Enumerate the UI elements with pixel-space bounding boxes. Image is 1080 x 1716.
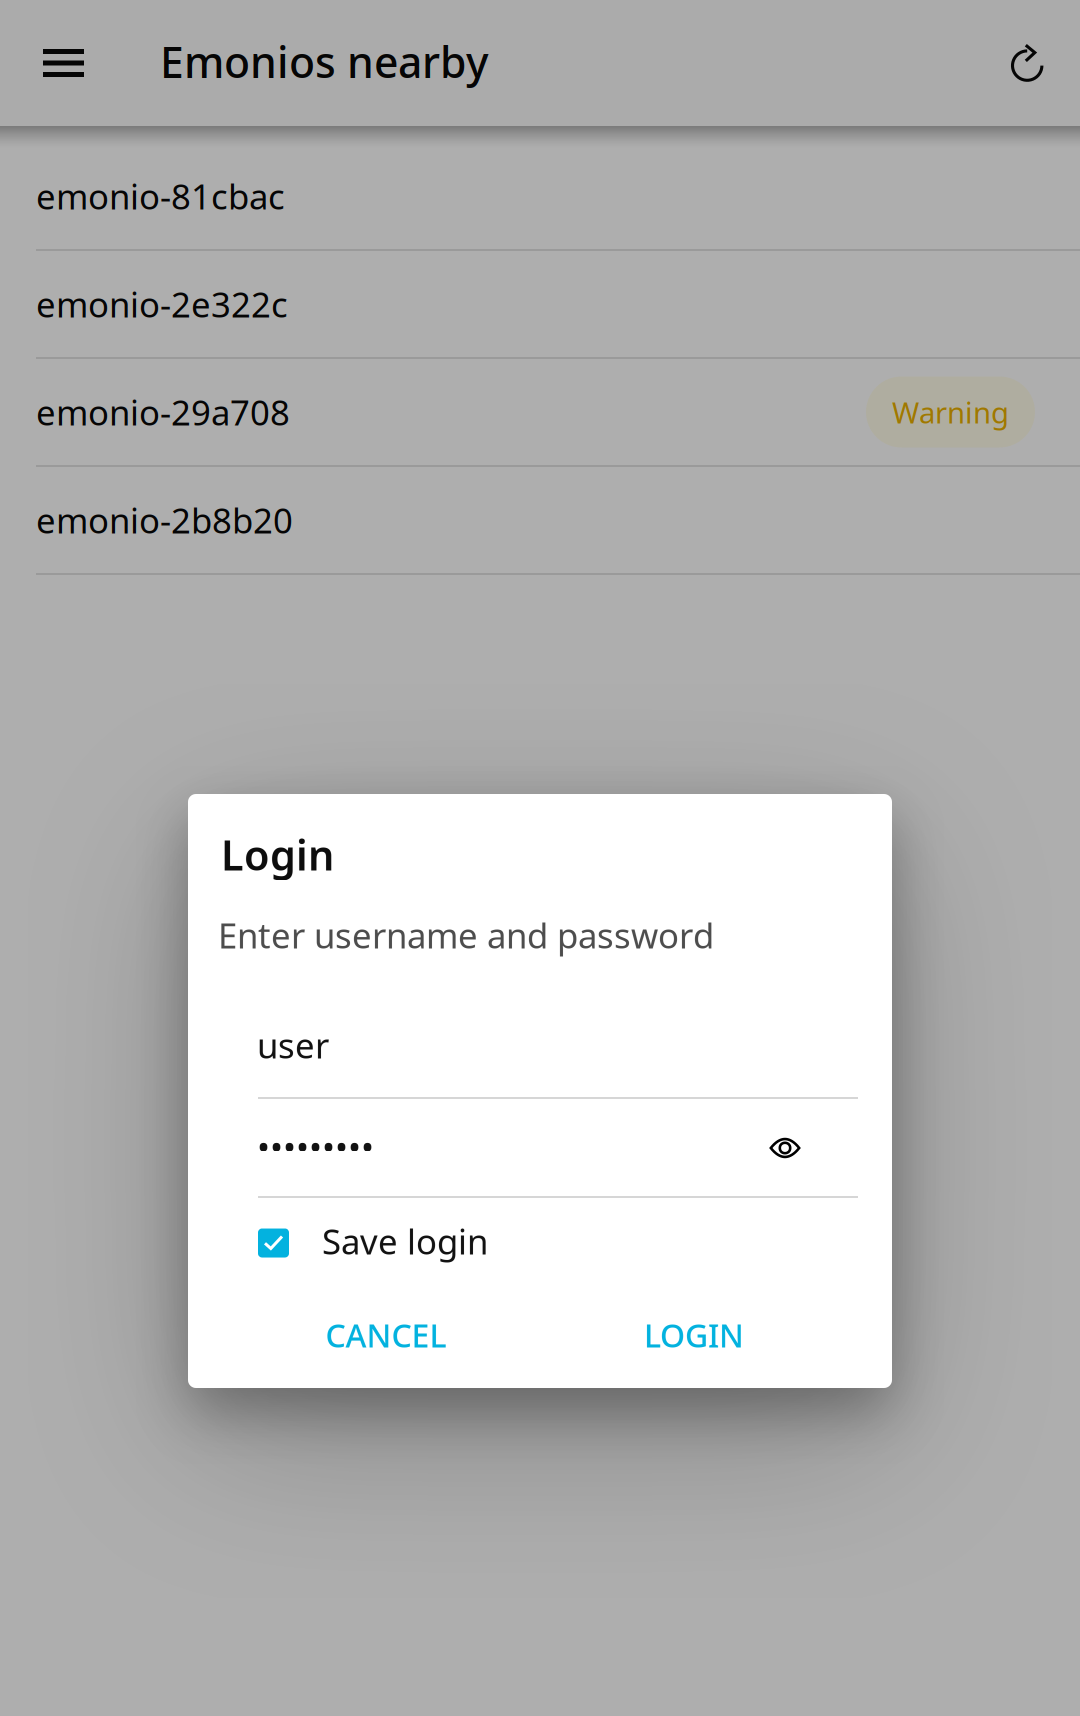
staticText: ••••••••• — [257, 1123, 374, 1169]
button[interactable]: emonio-2b8b20 — [0, 467, 1080, 575]
staticText: emonio-81cbac — [36, 173, 285, 219]
staticText: user — [257, 1022, 329, 1068]
button[interactable]: CANCEL — [303, 1299, 469, 1371]
staticText: emonio-29a708 — [36, 389, 290, 435]
button[interactable]: LOGIN — [626, 1299, 762, 1371]
staticText: Warning — [892, 392, 1009, 431]
staticText: Enter username and password — [218, 912, 714, 958]
button[interactable]: Menu — [11, 0, 116, 126]
staticText: Emonios nearby — [160, 33, 489, 90]
button[interactable]: emonio-29a708 — [0, 359, 1080, 467]
staticText: Login — [221, 827, 334, 882]
staticText: emonio-2e322c — [36, 281, 288, 327]
staticText: Save login — [322, 1218, 488, 1264]
button[interactable]: emonio-81cbac — [0, 143, 1080, 251]
button[interactable]: Save login — [258, 1212, 698, 1274]
button[interactable]: Show password — [749, 1112, 821, 1184]
button[interactable]: emonio-2e322c — [0, 251, 1080, 359]
staticText: LOGIN — [644, 1314, 744, 1356]
button[interactable]: Refresh — [975, 0, 1080, 126]
staticText: CANCEL — [325, 1314, 446, 1356]
staticText: emonio-2b8b20 — [36, 497, 293, 543]
